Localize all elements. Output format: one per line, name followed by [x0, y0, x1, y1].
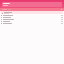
- button[interactable]: [0, 16, 64, 18]
- button[interactable]: [2, 2, 62, 7]
- button[interactable]: [1, 11, 63, 14]
- button[interactable]: [0, 14, 64, 16]
- button[interactable]: [0, 18, 64, 20]
- button[interactable]: Promotion banner: [0, 8, 64, 11]
- button[interactable]: [0, 20, 64, 22]
- button[interactable]: [0, 22, 64, 24]
